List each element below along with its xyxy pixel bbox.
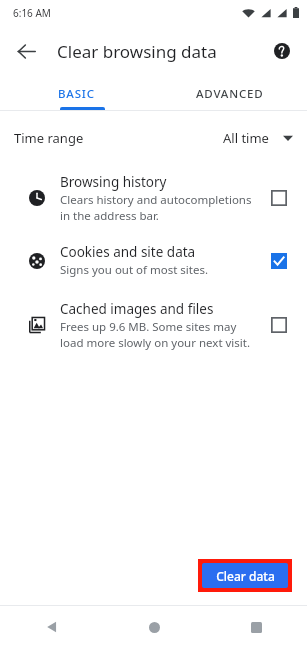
staticText: ADVANCED (196, 86, 264, 102)
button[interactable]: Unchecked (263, 182, 295, 214)
staticText: All time (223, 129, 269, 147)
staticText: BASIC (58, 86, 95, 102)
button[interactable]: Clear data (202, 563, 288, 588)
button[interactable]: ADVANCED (153, 77, 307, 110)
staticText: Clears history and autocompletions in th… (60, 192, 252, 223)
staticText: Cached images and files (60, 300, 214, 318)
button[interactable]: Home (103, 606, 205, 648)
button[interactable]: Browsing history (0, 170, 307, 226)
staticText: 6:16 AM (13, 6, 51, 20)
button[interactable]: Time range (0, 118, 307, 158)
button[interactable]: Unchecked (263, 309, 295, 341)
staticText: Clear data (216, 568, 275, 584)
button[interactable]: Help (262, 31, 302, 71)
staticText: Signs you out of most sites. (60, 262, 209, 278)
staticText: Time range (14, 129, 84, 147)
button[interactable]: Cached images and files (0, 297, 307, 353)
staticText: Clear browsing data (57, 40, 217, 63)
staticText: Browsing history (60, 173, 167, 191)
button[interactable]: BASIC (0, 77, 153, 110)
button[interactable]: Cookies and site data (0, 240, 307, 281)
staticText: Cookies and site data (60, 243, 196, 261)
button[interactable]: Checked (263, 245, 295, 277)
button[interactable]: Back (0, 606, 103, 648)
button[interactable]: Recent apps (205, 606, 307, 648)
button[interactable]: Back (6, 31, 46, 71)
staticText: Frees up 9.6 MB. Some sites may load mor… (60, 319, 251, 350)
